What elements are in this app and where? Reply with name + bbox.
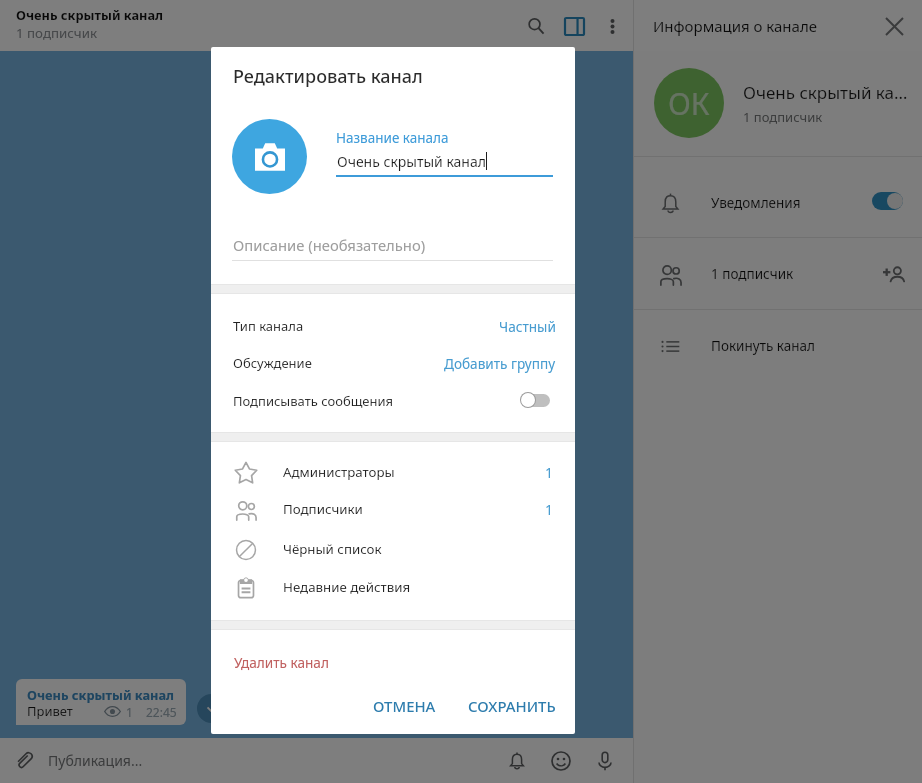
staticText: ОК	[668, 83, 710, 124]
button[interactable]: Удалить канал	[234, 653, 329, 672]
staticText: Администраторы	[283, 463, 545, 481]
staticText: Очень скрытый канал	[16, 6, 164, 23]
staticText: Привет	[27, 702, 73, 720]
button[interactable]: Обсуждение	[211, 346, 575, 380]
button[interactable]: Scroll to bottom	[197, 694, 226, 723]
staticText: 22:45	[146, 704, 177, 720]
button[interactable]: Add subscriber	[879, 259, 909, 289]
staticText: Редактировать канал	[233, 64, 423, 89]
staticText: 1 подписчик	[711, 265, 892, 283]
staticText: Уведомления	[711, 194, 922, 212]
button[interactable]: More options	[593, 7, 631, 45]
staticText: Очень скрытый канал	[27, 686, 175, 703]
button[interactable]: Change channel photo	[232, 119, 307, 194]
staticText: 1	[126, 704, 133, 720]
button[interactable]: СОХРАНИТЬ	[456, 687, 568, 725]
button[interactable]: Toggle info panel	[555, 7, 593, 45]
staticText: Описание (необязательно)	[233, 235, 426, 255]
staticText: Подписывать сообщения	[233, 392, 575, 410]
staticText: СОХРАНИТЬ	[468, 696, 556, 716]
button[interactable]: Чёрный список	[211, 532, 575, 566]
staticText: Информация о канале	[653, 16, 872, 36]
button[interactable]: Подписывать сообщения	[211, 384, 575, 418]
button[interactable]: Notifications	[495, 739, 539, 783]
staticText: Публикация...	[48, 751, 495, 770]
button[interactable]: Attach file	[0, 738, 46, 783]
staticText: Подписчики	[283, 500, 545, 518]
button[interactable]: Emoji	[539, 739, 583, 783]
staticText: Обсуждение	[233, 354, 444, 372]
staticText: Добавить группу	[444, 354, 556, 373]
staticText: Частный	[499, 317, 556, 336]
button[interactable]: ОК	[633, 56, 922, 150]
staticText: Покинуть канал	[711, 337, 922, 355]
button[interactable]: Уведомления	[633, 167, 922, 239]
staticText: 1 подписчик	[16, 24, 97, 42]
staticText: Название канала	[336, 129, 449, 147]
button[interactable]: Недавние действия	[211, 570, 575, 604]
staticText: Тип канала	[233, 317, 499, 335]
button[interactable]: Close	[872, 4, 916, 48]
staticText: 1 подписчик	[743, 108, 823, 126]
staticText: ОТМЕНА	[373, 696, 436, 716]
staticText: 1	[545, 500, 554, 519]
staticText: 1	[545, 463, 554, 482]
staticText: Очень скрытый канал	[337, 152, 486, 171]
button[interactable]: ОТМЕНА	[361, 687, 448, 725]
button[interactable]: Покинуть канал	[633, 310, 922, 382]
staticText: Очень скрытый ка…	[743, 81, 908, 104]
staticText: Чёрный список	[283, 540, 575, 558]
button[interactable]: Тип канала	[211, 309, 575, 343]
button[interactable]: Очень скрытый канал	[16, 679, 186, 725]
staticText: Недавние действия	[283, 578, 575, 596]
button[interactable]: Voice message	[583, 739, 627, 783]
button[interactable]: 1 подписчик	[633, 238, 922, 310]
button[interactable]: Подписчики	[211, 492, 575, 526]
button[interactable]: Администраторы	[211, 455, 575, 489]
button[interactable]: Search	[517, 7, 555, 45]
